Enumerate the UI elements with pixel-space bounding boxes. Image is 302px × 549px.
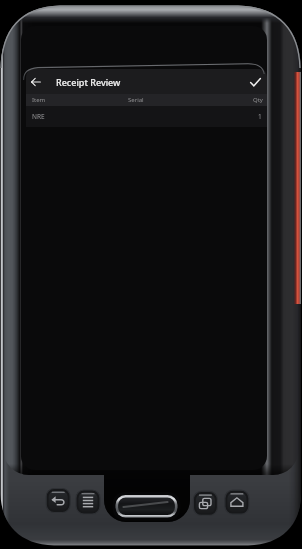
staticText: Serial: [128, 96, 144, 104]
staticText: Qty: [253, 96, 263, 104]
staticText: Receipt Review: [56, 76, 121, 88]
button[interactable]: Confirm: [245, 72, 265, 92]
staticText: 1: [258, 112, 262, 121]
button[interactable]: Back: [26, 72, 46, 92]
button[interactable]: NRE: [26, 106, 267, 127]
staticText: Item: [32, 96, 46, 104]
staticText: NRE: [32, 112, 45, 121]
